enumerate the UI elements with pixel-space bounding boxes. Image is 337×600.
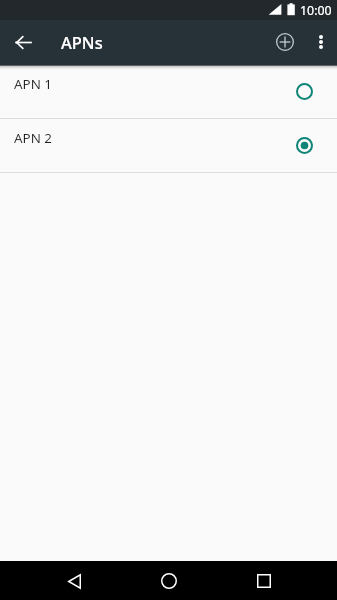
button[interactable]: Back bbox=[55, 562, 93, 600]
button[interactable]: APN 2 bbox=[0, 119, 337, 173]
button[interactable]: Navigate up bbox=[0, 20, 46, 65]
staticText: APN 1 bbox=[14, 75, 52, 93]
button[interactable]: Add APN bbox=[265, 22, 305, 62]
button[interactable]: Home bbox=[150, 562, 188, 600]
staticText: APN 2 bbox=[14, 129, 52, 147]
button[interactable]: Recent apps bbox=[245, 562, 283, 600]
button[interactable]: More options bbox=[305, 26, 337, 58]
staticText: APNs bbox=[61, 31, 103, 53]
staticText: 10:00 bbox=[300, 2, 332, 19]
button[interactable]: APN 1 bbox=[0, 65, 337, 119]
